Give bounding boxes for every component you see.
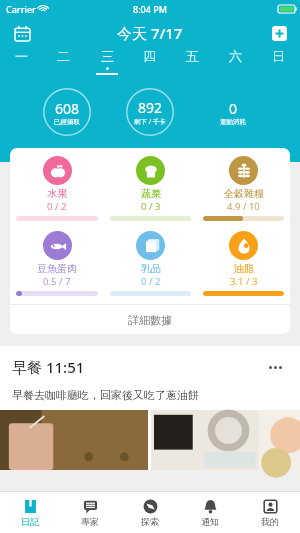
- button[interactable]: 五: [171, 48, 214, 80]
- button[interactable]: Meal photo 1: [0, 410, 148, 470]
- button[interactable]: 四: [128, 48, 171, 80]
- staticText: 0 / 3: [141, 200, 161, 213]
- staticText: 詳細數據: [128, 313, 172, 327]
- staticText: 通知: [201, 516, 219, 527]
- button[interactable]: 日: [257, 48, 300, 80]
- staticText: 二: [57, 48, 70, 64]
- staticText: 蔬菜: [141, 187, 161, 200]
- staticText: 0: [229, 99, 238, 118]
- staticText: 探索: [141, 516, 159, 527]
- button[interactable]: 水果: [16, 156, 98, 221]
- button[interactable]: Add: [266, 20, 292, 46]
- button[interactable]: 二: [42, 48, 85, 80]
- staticText: 一: [15, 48, 28, 64]
- staticText: 3.1 / 3: [230, 275, 258, 288]
- staticText: 今天 7/17: [117, 23, 183, 43]
- staticText: 我的: [261, 516, 279, 527]
- button[interactable]: 我的: [240, 492, 300, 533]
- staticText: Carrier: [6, 3, 36, 15]
- staticText: 0.5 / 7: [43, 275, 71, 288]
- button[interactable]: 油脂: [203, 231, 284, 296]
- staticText: 早餐去咖啡廳吃，回家後又吃了蔥油餅: [12, 388, 199, 402]
- staticText: 0 / 2: [141, 275, 161, 288]
- button[interactable]: Calendar: [8, 19, 36, 47]
- staticText: 五: [186, 48, 199, 64]
- staticText: 8:04 PM: [133, 3, 167, 15]
- staticText: 乳品: [141, 262, 161, 275]
- staticText: 油脂: [234, 262, 254, 275]
- button[interactable]: 詳細數據: [10, 305, 290, 334]
- button[interactable]: Meal photo 2: [151, 410, 300, 470]
- button[interactable]: 一: [0, 48, 42, 80]
- staticText: 4.9 / 10: [227, 200, 260, 213]
- staticText: 全穀雜糧: [224, 187, 264, 200]
- staticText: 豆魚蛋肉: [37, 262, 77, 275]
- staticText: 已經攝取: [54, 118, 80, 126]
- button[interactable]: 日記: [0, 492, 60, 533]
- staticText: 892: [138, 98, 163, 117]
- button[interactable]: 乳品: [110, 231, 191, 296]
- staticText: 專家: [81, 516, 99, 527]
- staticText: 四: [143, 48, 156, 64]
- staticText: 三: [101, 48, 114, 64]
- staticText: 運動消耗: [220, 118, 246, 126]
- button[interactable]: 探索: [120, 492, 180, 533]
- staticText: 日: [272, 48, 285, 64]
- staticText: 早餐 11:51: [12, 357, 85, 377]
- button[interactable]: 蔬菜: [110, 156, 191, 221]
- button[interactable]: 通知: [180, 492, 240, 533]
- staticText: 剩下 / 千卡: [134, 117, 166, 126]
- button[interactable]: 三: [85, 48, 128, 80]
- button[interactable]: More options: [262, 354, 288, 380]
- staticText: 水果: [47, 187, 67, 200]
- staticText: 六: [229, 48, 242, 64]
- staticText: 0 / 2: [47, 200, 67, 213]
- staticText: 608: [55, 99, 80, 118]
- button[interactable]: 豆魚蛋肉: [16, 231, 98, 296]
- button[interactable]: 六: [214, 48, 257, 80]
- button[interactable]: 全穀雜糧: [203, 156, 284, 221]
- button[interactable]: 專家: [60, 492, 120, 533]
- staticText: 日記: [21, 516, 39, 527]
